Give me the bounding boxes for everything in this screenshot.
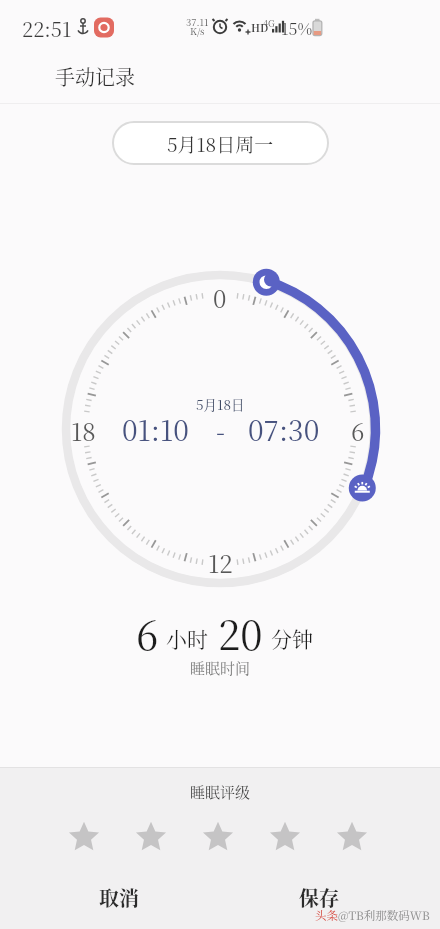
staticText: 18: [71, 413, 96, 447]
staticText: 头条: [315, 907, 338, 924]
staticText: HD: [251, 20, 269, 35]
staticText: -: [216, 411, 225, 448]
staticText: @TB利那数码WB: [338, 907, 430, 924]
staticText: 12: [208, 545, 233, 579]
button[interactable]: [132, 817, 170, 855]
staticText: 分钟: [271, 623, 313, 653]
staticText: 保存: [299, 883, 339, 912]
staticText: 小时: [166, 623, 208, 653]
staticText: 6: [136, 604, 159, 659]
staticText: 手动记录: [55, 62, 135, 91]
staticText: 4G: [263, 17, 275, 30]
button[interactable]: 5月18日周一: [112, 121, 329, 165]
staticText: 5月18日周一: [167, 130, 274, 157]
staticText: 01:10: [122, 409, 189, 449]
staticText: 22:51: [22, 14, 72, 43]
button[interactable]: [266, 817, 304, 855]
staticText: 5月18日: [196, 394, 245, 413]
staticText: 睡眠时间: [190, 657, 251, 679]
button[interactable]: [65, 817, 103, 855]
button[interactable]: 保存: [220, 870, 440, 925]
button[interactable]: [199, 817, 237, 855]
staticText: 取消: [99, 883, 139, 912]
staticText: 07:30: [248, 409, 320, 449]
staticText: K/s: [190, 24, 205, 38]
staticText: 20: [218, 604, 263, 659]
button[interactable]: 取消: [0, 870, 220, 925]
staticText: 0: [213, 280, 227, 314]
button[interactable]: [333, 817, 371, 855]
staticText: 6: [351, 413, 365, 447]
staticText: 睡眠评级: [190, 781, 251, 803]
staticText: 15%: [281, 17, 313, 40]
staticText: 37.11: [186, 15, 209, 29]
